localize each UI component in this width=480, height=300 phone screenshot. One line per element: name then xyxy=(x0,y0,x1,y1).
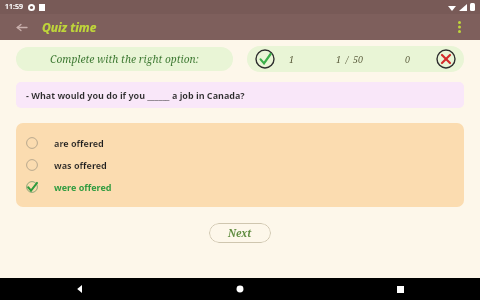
button[interactable]: Next xyxy=(209,223,271,243)
button[interactable]: Complete with the right option: xyxy=(16,47,233,71)
staticText: was offered xyxy=(54,159,107,171)
button[interactable]: Back xyxy=(10,16,32,38)
staticText: 11:59 xyxy=(5,2,23,12)
button[interactable]: was offered xyxy=(16,154,464,176)
button[interactable]: Home xyxy=(160,278,320,300)
staticText: - What would you do if you ______ a job … xyxy=(26,89,245,101)
button[interactable]: More options xyxy=(448,16,470,38)
staticText: Quiz time xyxy=(42,19,97,35)
staticText: 1 / 50 xyxy=(336,53,364,65)
staticText: 0 xyxy=(405,53,411,65)
staticText: 1 xyxy=(289,53,295,65)
button[interactable]: Back xyxy=(0,278,160,300)
button[interactable]: were offered xyxy=(16,176,464,198)
staticText: Next xyxy=(228,226,252,240)
button[interactable]: are offered xyxy=(16,132,464,154)
staticText: were offered xyxy=(54,181,112,193)
staticText: Complete with the right option: xyxy=(50,52,199,66)
staticText: are offered xyxy=(54,137,104,149)
button[interactable]: Recents xyxy=(320,278,480,300)
